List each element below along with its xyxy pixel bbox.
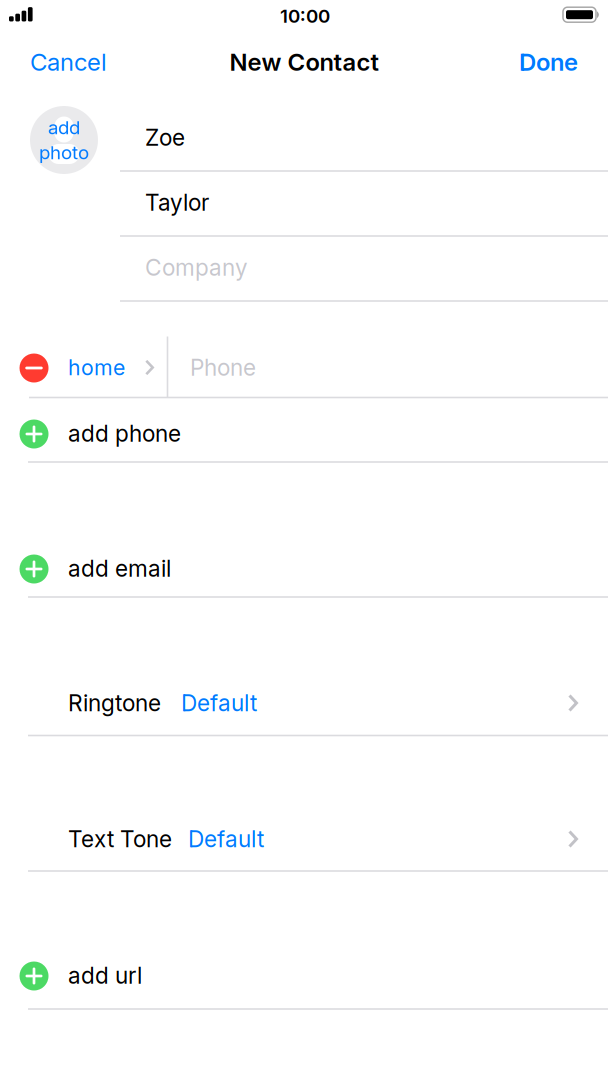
staticText: Ringtone xyxy=(68,690,161,716)
button[interactable]: add phone xyxy=(0,401,608,465)
button[interactable]: Cancel xyxy=(0,40,608,84)
staticText: photo xyxy=(39,141,89,163)
staticText: home xyxy=(68,355,125,380)
staticText: New Contact xyxy=(229,48,378,76)
staticText: Phone xyxy=(190,354,256,381)
button[interactable]: Company xyxy=(0,235,608,299)
staticText: Zoe xyxy=(145,124,185,151)
staticText: add url xyxy=(68,962,142,989)
button[interactable]: Done xyxy=(0,40,608,84)
staticText: Company xyxy=(145,254,248,281)
staticText: Cancel xyxy=(30,48,107,76)
button[interactable]: Remove phone xyxy=(19,353,48,382)
button[interactable]: Zoe xyxy=(0,105,608,169)
button[interactable]: add url xyxy=(0,943,608,1007)
staticText: Taylor xyxy=(145,189,209,216)
button[interactable]: Taylor xyxy=(0,170,608,234)
staticText: 10:00 xyxy=(280,5,330,27)
button[interactable]: Phone xyxy=(0,335,608,399)
staticText: Done xyxy=(519,48,578,76)
button[interactable]: add email xyxy=(0,536,608,600)
staticText: add phone xyxy=(68,420,181,447)
button[interactable]: Ringtone xyxy=(0,671,608,735)
button[interactable]: Text Tone xyxy=(0,807,608,871)
staticText: Text Tone xyxy=(68,826,172,852)
staticText: Default xyxy=(181,690,257,716)
staticText: Default xyxy=(188,826,264,852)
button[interactable]: Add photo xyxy=(30,106,98,174)
staticText: add email xyxy=(68,555,171,582)
staticText: add xyxy=(48,116,80,138)
button[interactable]: home xyxy=(68,355,154,380)
